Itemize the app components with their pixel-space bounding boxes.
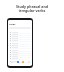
button[interactable] — [8, 56, 32, 58]
button[interactable] — [8, 49, 32, 51]
button[interactable] — [8, 33, 32, 35]
button[interactable] — [8, 38, 32, 40]
button[interactable] — [8, 42, 32, 44]
button[interactable]: Tab — [27, 60, 30, 63]
button[interactable] — [8, 35, 32, 37]
button[interactable] — [8, 53, 32, 55]
button[interactable] — [8, 47, 32, 49]
staticText: Verbs — [9, 23, 16, 26]
button[interactable]: Tab — [10, 60, 13, 63]
button[interactable] — [8, 40, 32, 42]
button[interactable]: Tab — [16, 60, 19, 63]
button[interactable] — [8, 31, 32, 33]
button[interactable]: Tab — [21, 60, 24, 63]
staticText: Study phrasal and irregular verbs — [0, 4, 64, 13]
button[interactable] — [8, 51, 32, 53]
button[interactable] — [8, 60, 32, 62]
button[interactable] — [8, 44, 32, 46]
button[interactable] — [8, 58, 32, 60]
